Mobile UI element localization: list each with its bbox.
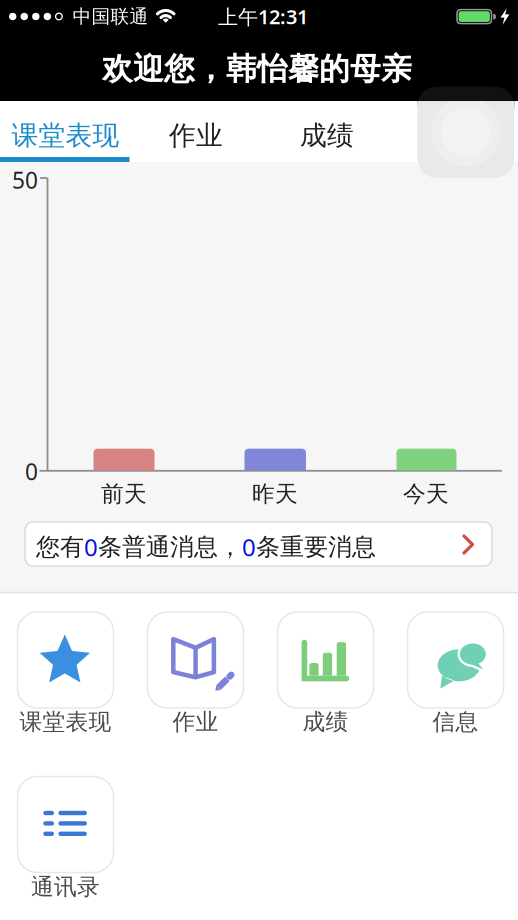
button[interactable] [147, 612, 243, 708]
button[interactable]: 作业 [146, 108, 246, 163]
staticText: 0 [25, 456, 38, 486]
staticText: 信息 [432, 708, 478, 736]
staticText: 50 [12, 165, 38, 195]
staticText: 条普通消息， [98, 532, 242, 562]
staticText: 今天 [403, 480, 449, 508]
staticText: 成绩 [302, 708, 348, 736]
staticText: 您有 [36, 532, 84, 562]
button[interactable]: 您有 [25, 522, 492, 566]
staticText: 0 [242, 531, 256, 563]
staticText: 作业 [169, 119, 223, 152]
button[interactable] [0, 0, 518, 920]
staticText: 条重要消息 [256, 532, 376, 562]
staticText: 课堂表现 [19, 708, 111, 736]
button[interactable] [17, 612, 113, 708]
staticText: 通讯录 [31, 873, 100, 901]
button[interactable] [277, 612, 373, 708]
staticText: 欢迎您，韩怡馨的母亲 [102, 50, 412, 88]
button[interactable] [17, 776, 113, 872]
button[interactable] [407, 612, 503, 708]
staticText: 中国联通 [72, 5, 148, 28]
staticText: 前天 [101, 480, 147, 508]
staticText: 课堂表现 [11, 119, 119, 152]
staticText: 昨天 [252, 480, 298, 508]
staticText: 作业 [172, 708, 218, 736]
staticText: 上午12:31 [218, 3, 308, 30]
button[interactable]: 成绩 [277, 108, 377, 163]
button[interactable]: 课堂表现 [1, 108, 130, 163]
staticText: 成绩 [300, 119, 354, 152]
staticText: 0 [84, 531, 98, 563]
